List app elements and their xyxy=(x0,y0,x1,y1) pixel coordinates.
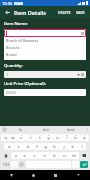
staticText: k xyxy=(71,144,74,150)
button[interactable]: l xyxy=(77,143,86,150)
staticText: SAVE xyxy=(76,10,85,15)
staticText: Bread xyxy=(6,52,17,57)
button[interactable]: 6 xyxy=(44,134,53,141)
button[interactable]: £0.00 xyxy=(4,89,86,96)
button[interactable]: Shift xyxy=(1,152,11,159)
staticText: y xyxy=(47,135,50,141)
button[interactable]: Emoji xyxy=(0,126,8,133)
staticText: v xyxy=(43,153,46,159)
staticText: 7 xyxy=(57,134,59,137)
staticText: i xyxy=(66,135,68,141)
button[interactable]: b xyxy=(49,152,59,159)
button[interactable]: , xyxy=(11,161,18,168)
staticText: x xyxy=(23,153,26,159)
staticText: g xyxy=(44,144,47,150)
button[interactable]: Hide keyboard xyxy=(67,170,90,180)
button[interactable]: . xyxy=(72,161,79,168)
staticText: ⋮ xyxy=(85,127,89,132)
button[interactable]: x xyxy=(20,152,29,159)
staticText: b xyxy=(53,153,56,159)
button[interactable]: 5 xyxy=(35,134,44,141)
staticText: Item Details xyxy=(14,9,46,16)
staticText: o xyxy=(74,135,77,141)
staticText: n xyxy=(63,153,66,159)
button[interactable]: Back xyxy=(3,8,12,17)
button[interactable]: a xyxy=(4,143,14,150)
staticText: Bunch of Bananas xyxy=(6,38,39,43)
button[interactable]: 1 xyxy=(1,134,9,141)
button[interactable]: 0 xyxy=(80,134,89,141)
button[interactable]: k xyxy=(68,143,77,150)
button[interactable]: Symbols xyxy=(1,161,11,168)
staticText: q xyxy=(4,135,7,141)
staticText: 9 xyxy=(75,134,77,137)
button[interactable]: h xyxy=(50,143,59,150)
button[interactable]: 4 xyxy=(26,134,35,141)
button[interactable]: c xyxy=(29,152,39,159)
staticText: In xyxy=(19,127,23,132)
button[interactable]: d xyxy=(23,143,32,150)
staticText: Biscuits xyxy=(6,45,20,50)
staticText: 6 xyxy=(48,134,50,137)
button[interactable]: m xyxy=(69,152,79,159)
staticText: s xyxy=(17,144,20,150)
button[interactable]: 9 xyxy=(71,134,80,141)
button[interactable]: but xyxy=(33,126,58,133)
button[interactable]: 7 xyxy=(53,134,62,141)
button[interactable]: s xyxy=(14,143,23,150)
button[interactable]: 8 xyxy=(62,134,71,141)
button[interactable]: z xyxy=(11,152,20,159)
button[interactable]: 2 xyxy=(9,134,17,141)
button[interactable]: In xyxy=(8,126,33,133)
button[interactable]: g xyxy=(41,143,50,150)
button[interactable]: f xyxy=(32,143,41,150)
staticText: . xyxy=(75,162,77,168)
staticText: 4 xyxy=(30,134,32,137)
staticText: 0 xyxy=(84,134,86,137)
staticText: w xyxy=(11,135,15,141)
staticText: h xyxy=(53,144,56,150)
staticText: DELETE xyxy=(58,10,71,15)
staticText: Item Name: xyxy=(4,21,28,27)
button[interactable]: best xyxy=(58,126,83,133)
button[interactable]: SAVE xyxy=(74,9,87,16)
button[interactable]: DELETE xyxy=(56,9,73,16)
staticText: r xyxy=(30,135,32,141)
button[interactable]: Emoji key xyxy=(18,161,25,168)
staticText: Unit Price (Optional): xyxy=(4,81,46,87)
staticText: d xyxy=(26,144,29,150)
staticText: t xyxy=(39,135,41,141)
staticText: c xyxy=(33,153,36,159)
button[interactable] xyxy=(4,29,86,37)
button[interactable]: 3 xyxy=(17,134,26,141)
button[interactable]: Bunch of Bananas xyxy=(4,37,86,44)
staticText: 8 xyxy=(66,134,68,137)
button[interactable]: More suggestions xyxy=(83,126,90,133)
button[interactable]: Recents xyxy=(44,170,67,180)
staticText: £0.00 xyxy=(6,90,16,95)
button[interactable]: 1 xyxy=(4,71,86,78)
button[interactable]: v xyxy=(39,152,49,159)
staticText: but xyxy=(43,127,49,132)
staticText: , xyxy=(14,162,16,168)
button[interactable]: Bread xyxy=(4,51,86,58)
staticText: e xyxy=(20,135,23,141)
staticText: l xyxy=(81,144,83,150)
staticText: 1 xyxy=(6,72,9,77)
staticText: 3 xyxy=(21,134,23,137)
button[interactable]: n xyxy=(59,152,69,159)
button[interactable]: j xyxy=(59,143,68,150)
staticText: j xyxy=(63,144,65,150)
staticText: a xyxy=(8,144,11,150)
button[interactable]: Back xyxy=(0,170,22,180)
button[interactable]: Biscuits xyxy=(4,44,86,51)
staticText: 5 xyxy=(39,134,41,137)
staticText: u xyxy=(56,135,59,141)
button[interactable]: Enter xyxy=(80,161,88,168)
staticText: z xyxy=(15,153,17,159)
button[interactable]: Home xyxy=(22,170,44,180)
button[interactable]: Backspace xyxy=(79,152,89,159)
staticText: f xyxy=(36,144,38,150)
staticText: 2 xyxy=(12,134,14,137)
